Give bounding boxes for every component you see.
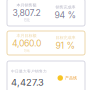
staticText: 销售完成率 [55, 5, 75, 10]
staticText: 4,427.3 [11, 77, 44, 88]
staticText: 本月目标额 [16, 33, 36, 38]
staticText: 万元 [23, 49, 29, 53]
staticText: 91 % [55, 40, 75, 51]
staticText: 产品线 [65, 75, 77, 80]
button[interactable]: 中日最大客户销售力 [7, 61, 85, 90]
staticText: 中日最大客户销售力 [11, 69, 47, 74]
button[interactable]: 本月目标额 [7, 31, 85, 55]
staticText: 万元 [23, 18, 29, 22]
staticText: 3,807.2 [12, 8, 40, 18]
button[interactable]: 本月销售额 [7, 0, 85, 26]
staticText: 本月销售额 [16, 3, 36, 8]
staticText: 4,060.0 [12, 38, 41, 49]
staticText: 目标完成率 [55, 35, 75, 40]
staticText: 94 % [54, 10, 76, 20]
